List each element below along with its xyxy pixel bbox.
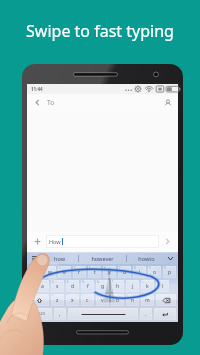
button[interactable]: f [81, 280, 94, 292]
staticText: ?123 [36, 311, 46, 317]
staticText: howto [138, 255, 155, 262]
button[interactable]: u [118, 266, 131, 278]
staticText: ; [112, 294, 113, 298]
button[interactable]: Keyboard menu [30, 252, 40, 264]
staticText: " [67, 294, 69, 298]
staticText: i [139, 269, 141, 276]
button[interactable]: z [51, 294, 64, 306]
button[interactable]: m [141, 294, 154, 306]
button[interactable]: x [66, 294, 79, 306]
button[interactable]: t [88, 266, 101, 278]
staticText: To [47, 98, 55, 107]
button[interactable]: d [66, 280, 79, 292]
staticText: # [52, 280, 54, 284]
staticText: ( [157, 280, 158, 284]
button[interactable]: g [96, 280, 109, 292]
staticText: + [142, 280, 144, 284]
staticText: , [59, 311, 61, 318]
button[interactable]: More suggestions [165, 252, 175, 264]
staticText: ? [142, 294, 144, 298]
staticText: / [127, 294, 128, 298]
button[interactable]: e [58, 266, 71, 278]
button[interactable]: b [111, 294, 124, 306]
button[interactable]: , [54, 308, 66, 320]
staticText: w [48, 269, 52, 276]
staticText: 6 [104, 266, 106, 270]
staticText: s [56, 283, 59, 290]
button[interactable]: j [126, 280, 139, 292]
button[interactable]: r [73, 266, 86, 278]
button[interactable]: v [96, 294, 109, 306]
staticText: however [91, 255, 114, 262]
button[interactable]: k [141, 280, 154, 292]
staticText: - [127, 280, 128, 284]
staticText: x [71, 297, 74, 304]
button[interactable]: however [79, 252, 126, 264]
button[interactable]: how [40, 252, 78, 264]
staticText: Swipe to fast typing [26, 20, 174, 42]
staticText: m [145, 297, 150, 304]
staticText: % [82, 280, 85, 284]
staticText: 8 [134, 266, 136, 270]
button[interactable]: . [140, 308, 152, 320]
staticText: a [41, 283, 44, 290]
staticText: ! [52, 294, 53, 298]
staticText: 0 [164, 266, 166, 270]
staticText: 7 [119, 266, 121, 270]
staticText: y [108, 269, 111, 276]
staticText: how [54, 255, 65, 262]
staticText: 11:44 [31, 86, 43, 92]
staticText: g [101, 283, 105, 290]
button[interactable]: l [156, 280, 169, 292]
staticText: ' [82, 294, 83, 298]
button[interactable]: p [163, 266, 176, 278]
button[interactable]: Send [161, 235, 174, 248]
staticText: r [78, 269, 81, 276]
staticText: $ [67, 280, 69, 284]
staticText: n [131, 297, 135, 304]
button[interactable]: h [111, 280, 124, 292]
staticText: . [145, 311, 147, 318]
staticText: d [71, 283, 75, 290]
button[interactable]: Symbols [29, 308, 52, 320]
button[interactable]: Shift [29, 294, 49, 306]
button[interactable]: Attach [31, 235, 44, 248]
staticText: 5 [89, 266, 91, 270]
button[interactable]: Contacts [161, 96, 174, 109]
staticText: z [56, 297, 59, 304]
button[interactable]: howto [127, 252, 165, 264]
button[interactable]: n [126, 294, 139, 306]
staticText: & [97, 280, 99, 284]
button[interactable]: i [133, 266, 146, 278]
staticText: b [116, 297, 120, 304]
staticText: j [132, 283, 134, 290]
staticText: f [87, 283, 89, 290]
button[interactable]: Backspace [156, 294, 176, 306]
staticText: h [116, 283, 120, 290]
button[interactable]: y [103, 266, 116, 278]
button[interactable]: c [81, 294, 94, 306]
staticText: o [153, 269, 157, 276]
button[interactable]: w [43, 266, 56, 278]
staticText: : [97, 294, 98, 298]
button[interactable]: Space [68, 308, 138, 320]
button[interactable]: How [46, 235, 159, 248]
button[interactable]: a [36, 280, 49, 292]
staticText: 4 [74, 266, 76, 270]
staticText: k [146, 283, 149, 290]
staticText: How [49, 238, 61, 245]
staticText: p [168, 269, 172, 276]
staticText: * [112, 280, 114, 284]
staticText: u [123, 269, 127, 276]
button[interactable]: o [148, 266, 161, 278]
staticText: 3 [59, 266, 61, 270]
button[interactable]: Back [31, 96, 44, 109]
staticText: e [63, 269, 66, 276]
staticText: 9 [149, 266, 151, 270]
button[interactable]: Enter [154, 308, 176, 320]
button[interactable]: s [51, 280, 64, 292]
